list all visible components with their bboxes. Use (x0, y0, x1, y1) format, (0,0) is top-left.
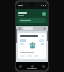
button[interactable]: Search (18, 18, 46, 23)
button[interactable]: Back (19, 65, 22, 68)
button[interactable]: More options (43, 27, 46, 30)
button[interactable]: Card options (18, 33, 46, 59)
button[interactable]: Home (31, 65, 34, 68)
button[interactable] (23, 27, 33, 30)
button[interactable]: Profile (42, 12, 46, 16)
button[interactable]: Menu (18, 27, 21, 30)
other: Item illustration (29, 42, 36, 49)
button[interactable]: Recents (42, 65, 45, 68)
